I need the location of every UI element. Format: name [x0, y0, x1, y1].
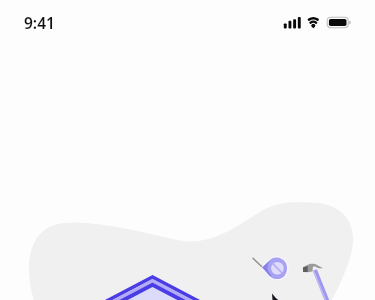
- other: Home repair tools illustration: [0, 0, 375, 300]
- other: Signal, Wi-Fi and battery status: [0, 0, 375, 300]
- staticText: 9:41: [24, 12, 55, 33]
